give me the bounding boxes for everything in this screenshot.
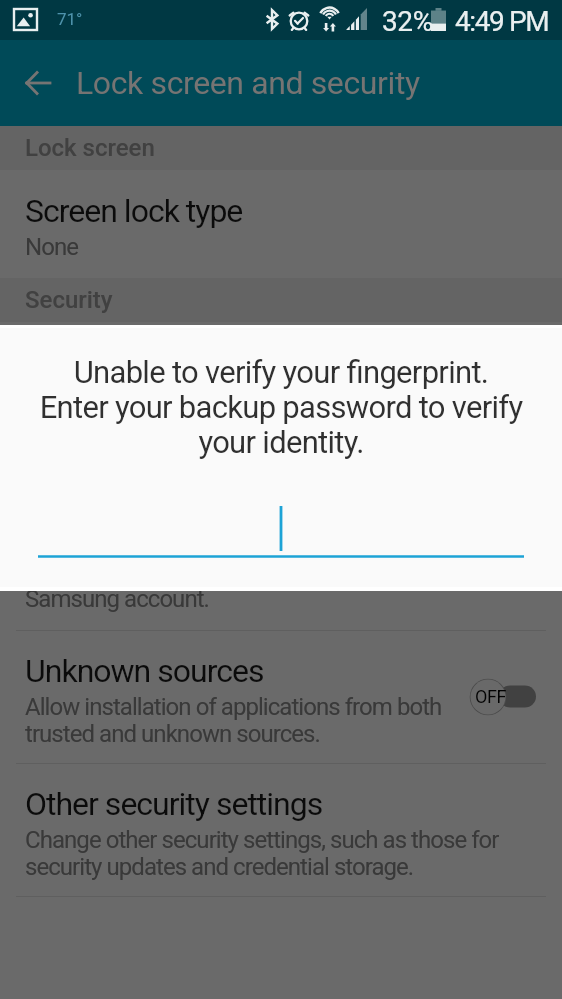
- staticText: Other security settings: [25, 785, 323, 823]
- other: Navigate up: [26, 72, 50, 94]
- staticText: Lock screen and security: [76, 64, 420, 102]
- button[interactable]: Navigate up: [0, 40, 76, 126]
- staticText: Unknown sources: [25, 652, 264, 690]
- button[interactable]: Find My Mobile: [0, 322, 562, 630]
- button[interactable]: Unknown sources: [0, 630, 562, 763]
- staticText: Screen lock type: [25, 192, 243, 230]
- staticText: 4:49 PM: [455, 5, 549, 38]
- staticText: None: [25, 233, 525, 261]
- staticText: 32%: [382, 5, 433, 38]
- staticText: Lock screen: [25, 134, 155, 162]
- staticText: Find My Mobile: [25, 344, 228, 382]
- staticText: Allow installation of applications from …: [25, 693, 465, 748]
- staticText: Change other security settings, such as …: [25, 826, 525, 881]
- staticText: Security: [25, 286, 113, 314]
- staticText: OFF: [475, 686, 507, 707]
- button[interactable]: Screen lock type: [0, 170, 562, 278]
- staticText: Locate and control your device remotely …: [25, 558, 530, 613]
- staticText: 71°: [57, 9, 83, 29]
- staticText: Unable to verify your fingerprint. Enter…: [18, 354, 544, 460]
- button[interactable]: Other security settings: [0, 763, 562, 896]
- button[interactable]: Unknown sources switch, off: [470, 678, 536, 716]
